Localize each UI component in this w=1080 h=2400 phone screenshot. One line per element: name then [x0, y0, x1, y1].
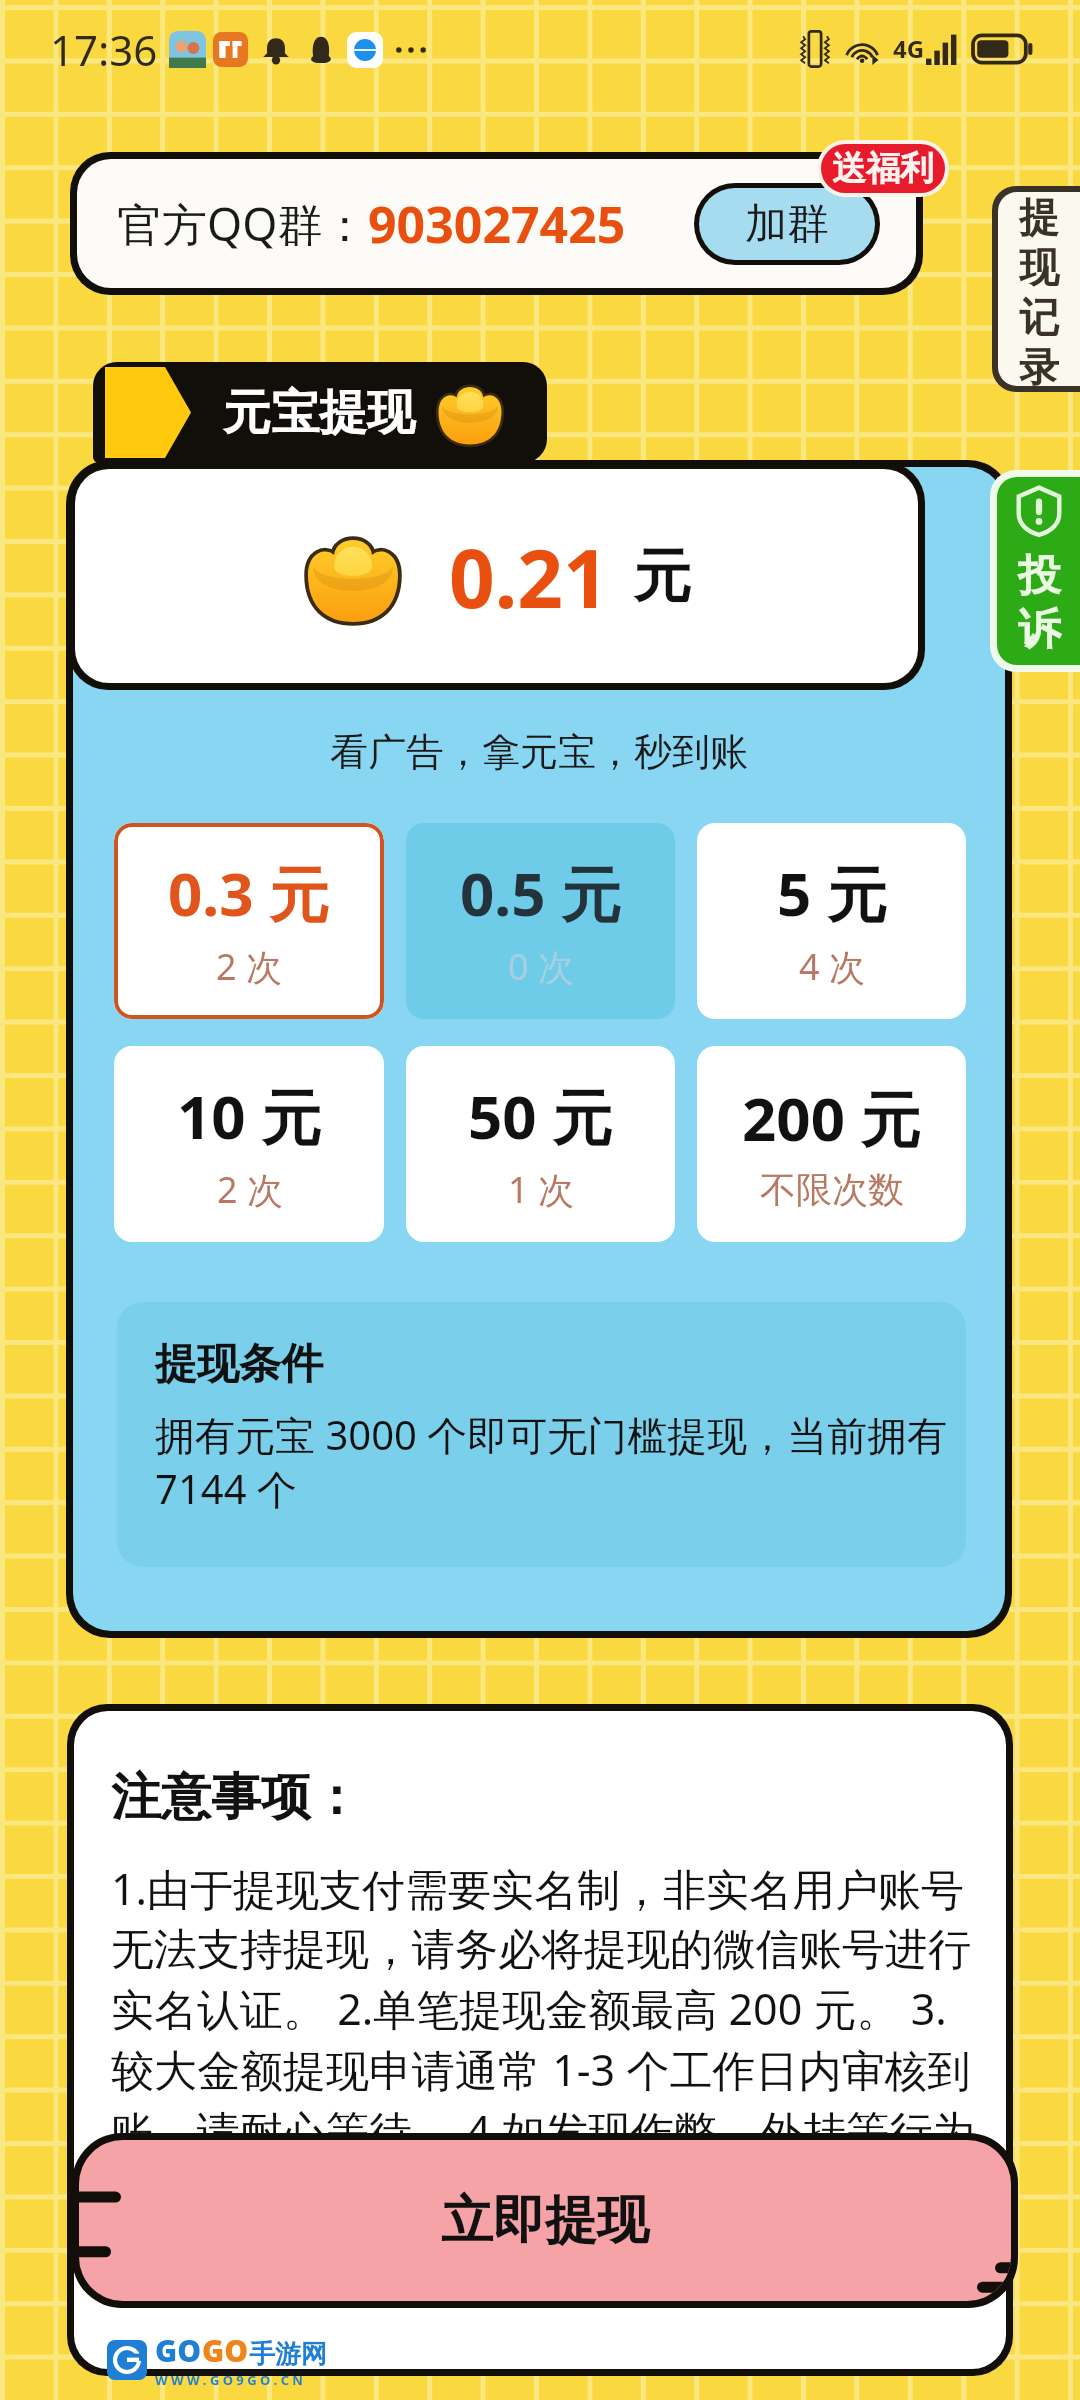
staticText: 诉 — [1018, 603, 1061, 657]
staticText: 4G — [893, 32, 925, 65]
staticText: 10 元 — [177, 1075, 322, 1157]
button[interactable]: 200 元 — [697, 1046, 966, 1242]
staticText: 2 次 — [216, 942, 282, 991]
staticText: 4 次 — [799, 942, 865, 991]
staticText: 加群 — [745, 198, 829, 251]
staticText: 903027425 — [368, 190, 626, 258]
staticText: 现 — [1019, 242, 1059, 292]
staticText: 官方QQ群： — [117, 193, 368, 254]
button[interactable]: 立即提现 — [79, 2140, 1011, 2301]
staticText: 0.21 — [449, 522, 609, 631]
button[interactable]: 官方QQ群： — [77, 159, 916, 288]
staticText: 立即提现 — [441, 2188, 649, 2254]
staticText: 看广告，拿元宝，秒到账 — [330, 728, 748, 776]
button[interactable]: 0.3 元 — [114, 823, 384, 1019]
staticText: 200 元 — [742, 1077, 921, 1159]
staticText: GO — [155, 2330, 202, 2371]
staticText: 1 次 — [508, 1165, 574, 1214]
button[interactable]: 0.5 元 — [406, 823, 675, 1019]
button[interactable]: 送福利 — [821, 144, 945, 193]
staticText: 0.3 元 — [168, 852, 330, 934]
staticText: 50 元 — [468, 1075, 613, 1157]
staticText: 元宝提现 — [223, 383, 415, 443]
staticText: 5 元 — [777, 852, 887, 934]
staticText: 1.由于提现支付需要实名制，非实名用户账号无法支持提现，请务必将提现的微信账号进… — [111, 1859, 988, 2160]
staticText: 送福利 — [832, 147, 934, 190]
button[interactable]: 50 元 — [406, 1046, 675, 1242]
button[interactable]: 加群 — [699, 188, 875, 260]
staticText: 提 — [1019, 192, 1059, 242]
staticText: 提现条件 — [155, 1338, 323, 1391]
staticText: 记 — [1019, 292, 1059, 342]
button[interactable]: 5 元 — [697, 823, 966, 1019]
staticText: GO — [202, 2330, 249, 2371]
staticText: 0.5 元 — [460, 852, 622, 934]
staticText: 注意事项： — [111, 1766, 361, 1829]
staticText: 元 — [633, 540, 691, 613]
button[interactable]: 投诉 — [997, 477, 1080, 665]
button[interactable]: 10 元 — [114, 1046, 384, 1242]
staticText: 录 — [1019, 342, 1059, 386]
staticText: 17:36 — [50, 21, 158, 78]
staticText: 投 — [1018, 549, 1061, 603]
button[interactable]: 提现记录 — [998, 192, 1080, 386]
staticText: 2 次 — [217, 1165, 283, 1214]
staticText: 0 次 — [508, 942, 574, 991]
staticText: 不限次数 — [760, 1167, 904, 1212]
staticText: 拥有元宝 3000 个即可无门槛提现，当前拥有 7144 个 — [155, 1407, 952, 1516]
staticText: 手游网 — [249, 2338, 327, 2371]
staticText: W W W . G O 9 G O . C N — [155, 2371, 303, 2389]
